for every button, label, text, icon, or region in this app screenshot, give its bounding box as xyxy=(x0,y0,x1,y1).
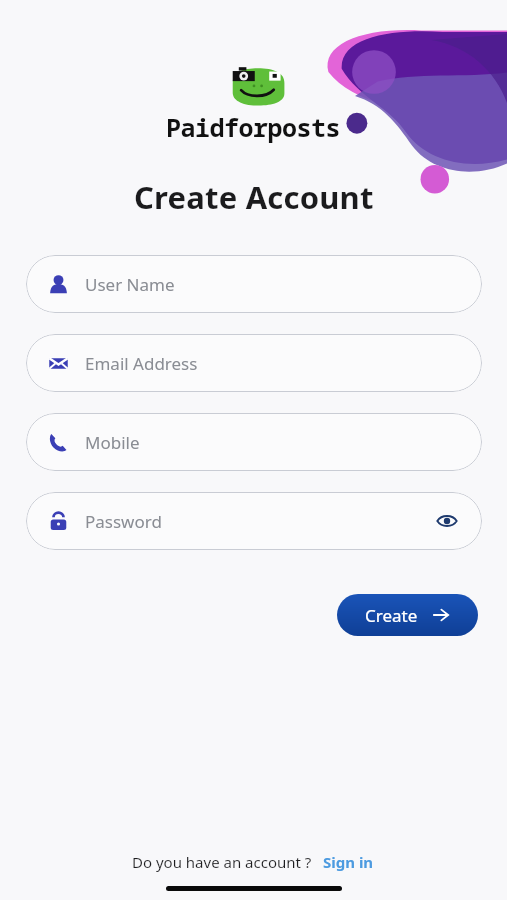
button[interactable]: User Name xyxy=(26,255,482,313)
button[interactable]: Email Address xyxy=(26,334,482,392)
button[interactable]: Sign in xyxy=(321,850,376,874)
button[interactable]: Create xyxy=(337,594,478,636)
button[interactable]: Mobile xyxy=(26,413,482,471)
staticText: Password xyxy=(85,510,162,533)
staticText: Mobile xyxy=(85,431,140,454)
staticText: Email Address xyxy=(85,352,198,375)
button[interactable]: Show password xyxy=(434,508,460,534)
staticText: User Name xyxy=(85,273,175,296)
staticText: Paidforposts xyxy=(166,110,341,144)
staticText: Create Account xyxy=(134,176,374,218)
staticText: Sign in xyxy=(323,852,374,872)
staticText: Do you have an account ? xyxy=(132,852,312,872)
staticText: Create xyxy=(365,604,418,627)
button[interactable]: Password xyxy=(26,492,482,550)
